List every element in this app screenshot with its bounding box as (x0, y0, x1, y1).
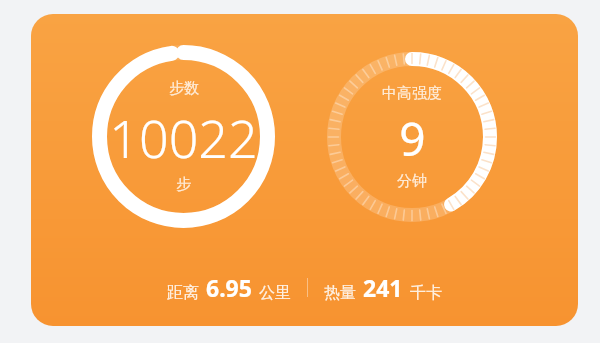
staticText: 中高强度 (382, 84, 442, 103)
staticText: 公里 (259, 283, 291, 303)
staticText: 步数 (169, 79, 199, 98)
button[interactable]: 中高强度 9 分钟 (327, 52, 497, 222)
staticText: 241 (363, 272, 403, 303)
staticText: 千卡 (410, 283, 442, 303)
staticText: 距离 (167, 283, 199, 303)
staticText: 步 (176, 175, 191, 194)
staticText: 热量 (324, 283, 356, 303)
button[interactable]: 热量 (322, 272, 444, 303)
button[interactable]: 步数 10022 步 (31, 14, 578, 326)
staticText: 6.95 (206, 272, 252, 303)
button[interactable]: 距离 (165, 272, 293, 303)
staticText: 分钟 (397, 172, 427, 191)
staticText: 10022 (109, 102, 258, 173)
staticText: 9 (399, 107, 426, 170)
button[interactable]: 步数 10022 步 (92, 45, 275, 228)
